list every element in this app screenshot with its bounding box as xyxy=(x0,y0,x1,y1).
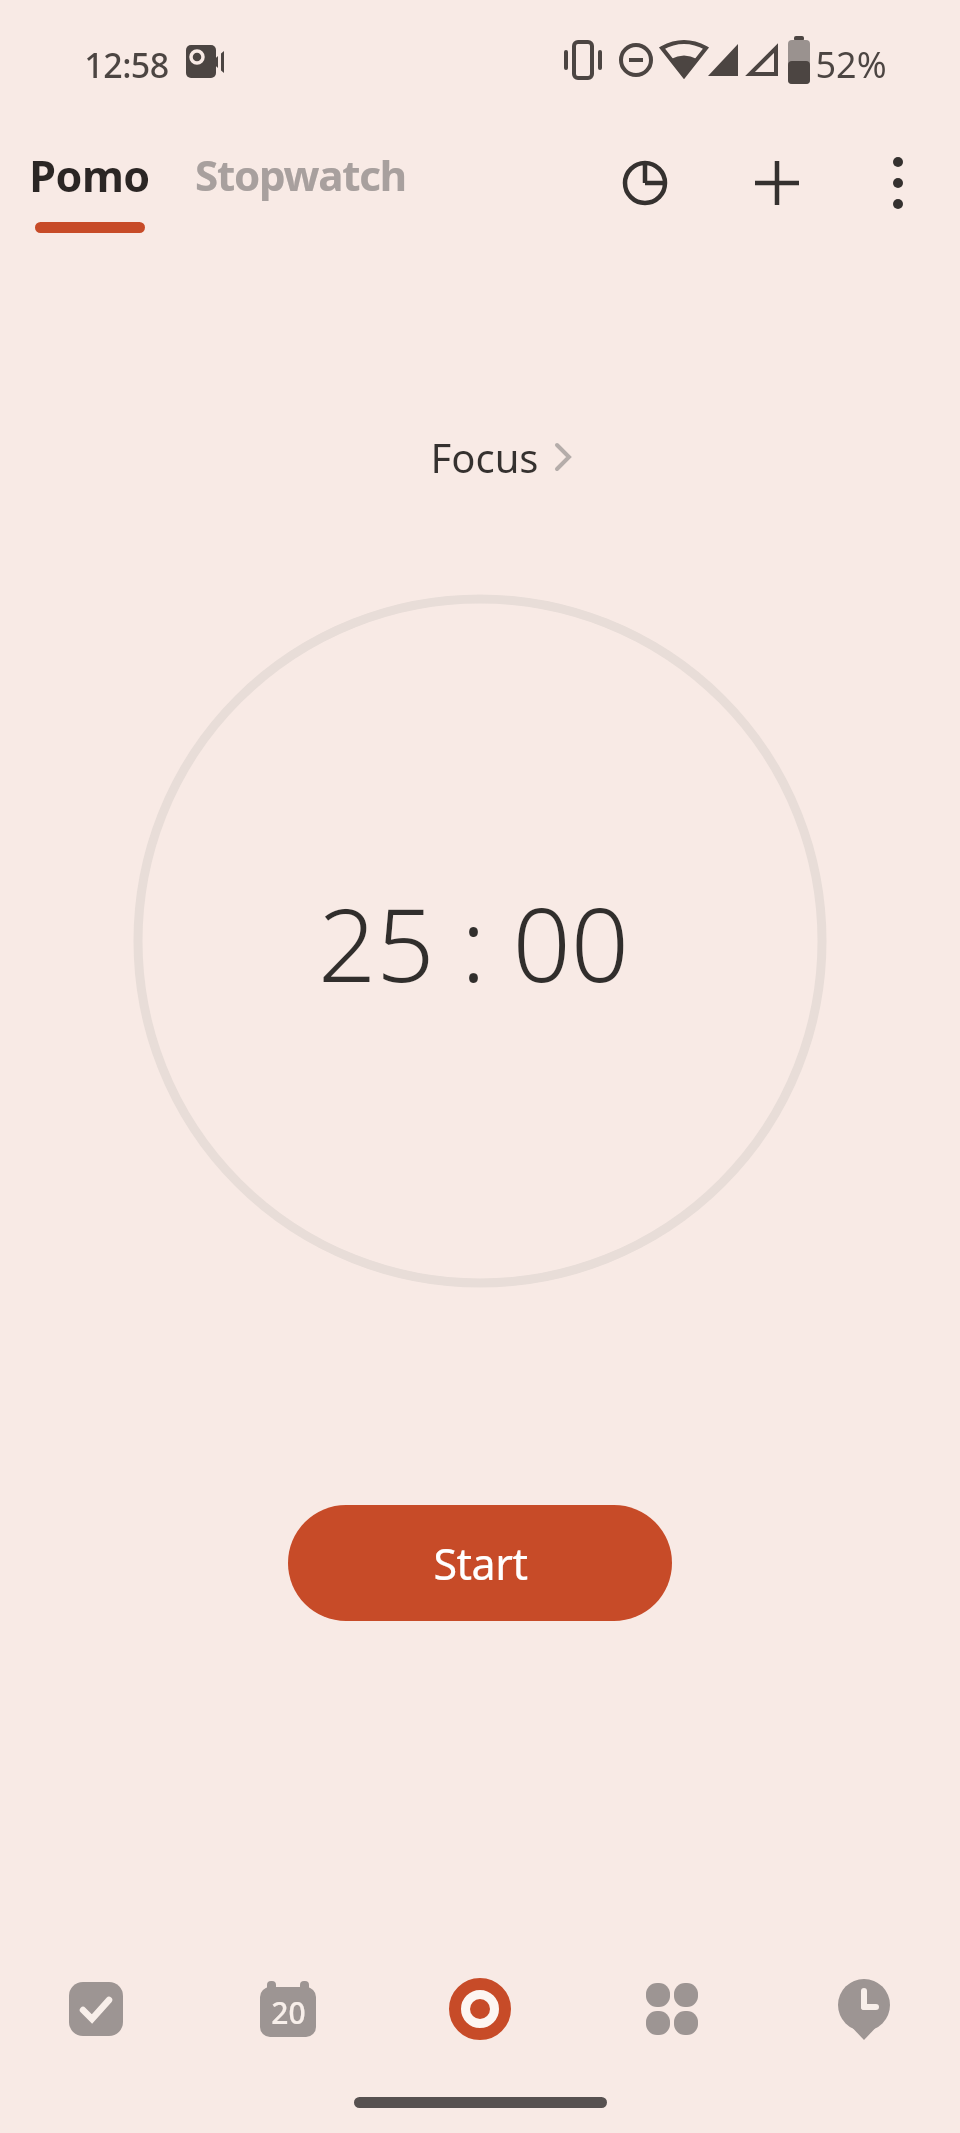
button[interactable] xyxy=(737,143,817,223)
staticText: Pomo xyxy=(29,146,150,205)
staticText: Focus xyxy=(430,430,539,484)
button[interactable]: Stopwatch xyxy=(195,146,406,203)
button[interactable] xyxy=(48,1961,144,2057)
button[interactable]: 20 xyxy=(240,1961,336,2057)
button[interactable] xyxy=(605,143,685,223)
button[interactable] xyxy=(624,1961,720,2057)
button[interactable] xyxy=(858,143,938,223)
button[interactable] xyxy=(816,1961,912,2057)
staticText: Start xyxy=(433,1534,528,1593)
staticText: Stopwatch xyxy=(195,146,406,203)
button[interactable] xyxy=(432,1961,528,2057)
button[interactable]: Focus xyxy=(420,424,585,490)
staticText: 25 : 00 xyxy=(318,873,629,1012)
button[interactable]: Pomo xyxy=(20,146,159,233)
button[interactable]: Start xyxy=(288,1505,672,1621)
staticText: 20 xyxy=(271,1992,306,2033)
staticText: 52% xyxy=(815,40,887,89)
staticText: 12:58 xyxy=(84,42,169,88)
